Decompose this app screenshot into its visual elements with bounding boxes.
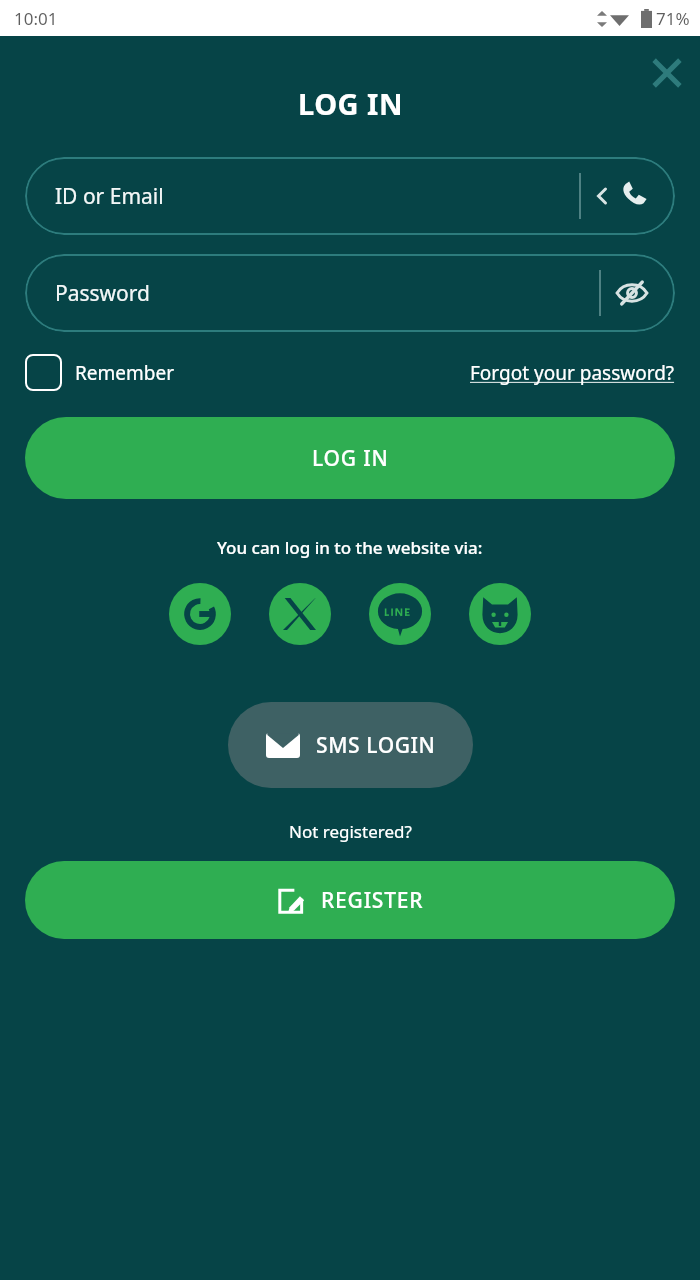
staticText: Not registered?	[289, 820, 412, 843]
staticText: REGISTER	[321, 886, 424, 915]
staticText: Remember	[75, 360, 175, 386]
staticText: You can log in to the website via:	[217, 536, 483, 559]
staticText: ID or Email	[55, 182, 164, 211]
button[interactable]: Google	[169, 583, 231, 645]
staticText: LOG IN	[298, 84, 403, 123]
staticText: 71%	[656, 7, 690, 30]
other: Phone	[619, 181, 649, 211]
staticText: 10:01	[14, 7, 58, 30]
button[interactable]: LOG IN	[25, 417, 675, 499]
button[interactable]: ID or Email	[25, 157, 675, 235]
button[interactable]: SMS LOGIN	[228, 702, 473, 788]
button[interactable]: Forgot your password?	[470, 360, 675, 386]
staticText: LOG IN	[312, 444, 389, 473]
button[interactable]: Yahoo	[469, 583, 531, 645]
button[interactable]: X	[269, 583, 331, 645]
other: Show password	[615, 280, 649, 306]
button[interactable]: LINE	[369, 583, 431, 645]
other: Country code	[595, 186, 609, 206]
button[interactable]: Close	[640, 46, 694, 100]
staticText: Password	[55, 279, 150, 308]
button[interactable]: Password	[25, 254, 675, 332]
button[interactable]: Remember	[25, 354, 175, 391]
button[interactable]: REGISTER	[25, 861, 675, 939]
staticText: SMS LOGIN	[316, 731, 436, 760]
